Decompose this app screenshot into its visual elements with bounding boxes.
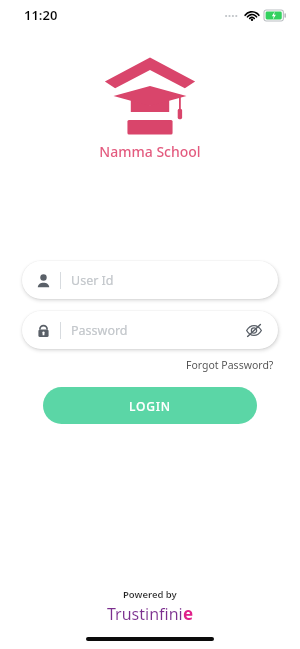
staticText: Trustinfini [107,603,183,625]
staticText: e [183,602,194,625]
button[interactable]: LOGIN [43,387,257,424]
staticText: LOGIN [129,398,171,414]
staticText: Namma School [99,142,201,161]
staticText: User Id [71,272,264,289]
staticText: Powered by [123,588,177,601]
staticText: Forgot Password? [186,358,274,372]
button[interactable]: Forgot Password? [184,356,276,374]
button[interactable]: Show password [244,320,264,340]
staticText: Password [71,322,244,339]
button[interactable]: User Id [22,261,278,299]
button[interactable]: Password [22,311,278,349]
staticText: 11:20 [24,6,58,24]
